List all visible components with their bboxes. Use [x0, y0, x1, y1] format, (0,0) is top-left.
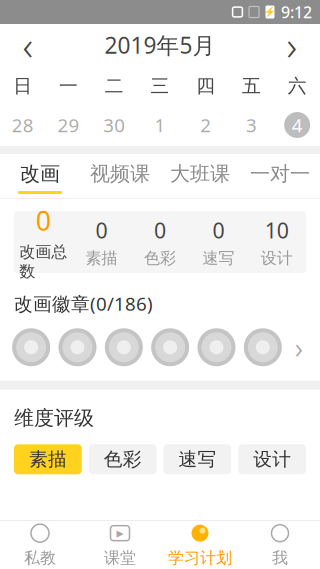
staticText: 一 [59, 74, 78, 97]
staticText: 2 [200, 113, 211, 137]
button[interactable]: 一对一 [240, 154, 320, 198]
staticText: 课堂 [104, 548, 136, 568]
staticText: 设计 [253, 448, 291, 471]
staticText: 四 [196, 74, 215, 97]
staticText: 我 [272, 548, 288, 568]
staticText: 0 [212, 216, 224, 244]
staticText: 素描 [86, 248, 118, 268]
staticText: › [286, 18, 297, 71]
button[interactable]: 改画 [0, 154, 80, 198]
staticText: 29 [58, 113, 80, 137]
staticText: 色彩 [144, 248, 176, 268]
staticText: 2019年5月 [104, 30, 215, 60]
staticText: ⚡ [264, 7, 276, 17]
button[interactable]: 3 [229, 108, 274, 142]
staticText: 五 [242, 74, 261, 97]
staticText: 改画徽章(0/186) [14, 291, 153, 316]
staticText: 色彩 [104, 448, 142, 471]
button[interactable]: 2 [183, 108, 229, 142]
staticText: 0 [96, 216, 108, 244]
staticText: 二 [105, 74, 124, 97]
button[interactable]: 视频课 [80, 154, 160, 198]
staticText: 10 [265, 216, 289, 244]
staticText: 维度评级 [14, 406, 94, 430]
staticText: 速写 [202, 248, 234, 268]
staticText: 视频课 [90, 161, 150, 186]
button[interactable]: 速写 [163, 444, 231, 474]
staticText: › [295, 328, 303, 367]
staticText: 1 [154, 113, 165, 137]
button[interactable]: 学习计划 [160, 521, 240, 569]
staticText: 一对一 [250, 161, 310, 186]
button[interactable]: Next month [264, 24, 320, 66]
staticText: 速写 [178, 448, 216, 471]
button[interactable]: 28 [0, 108, 46, 142]
staticText: 三 [150, 74, 169, 97]
button[interactable]: 色彩 [89, 444, 157, 474]
staticText: 改画总数 [19, 242, 67, 281]
button[interactable]: 4 [274, 108, 320, 142]
button[interactable]: 我 [240, 521, 320, 569]
staticText: 9:12 [281, 1, 312, 23]
button[interactable]: 私教 [0, 521, 80, 569]
button[interactable]: 大班课 [160, 154, 240, 198]
button[interactable]: 设计 [238, 444, 306, 474]
staticText: 30 [103, 113, 125, 137]
button[interactable]: ▶ [80, 521, 160, 569]
button[interactable]: 素描 [14, 444, 82, 474]
staticText: 0 [154, 216, 166, 244]
button[interactable]: Previous month [0, 24, 56, 66]
staticText: 4 [292, 113, 303, 137]
staticText: 28 [12, 113, 34, 137]
staticText: 私教 [24, 548, 56, 568]
staticText: 素描 [29, 448, 67, 471]
staticText: 3 [246, 113, 257, 137]
staticText: 0 [36, 203, 51, 238]
staticText: 学习计划 [168, 548, 232, 568]
staticText: ▶ [116, 528, 123, 538]
staticText: 日 [13, 74, 32, 97]
button[interactable]: Badges [0, 316, 320, 381]
staticText: 改画 [20, 161, 60, 186]
staticText: 设计 [261, 248, 293, 268]
staticText: ‹ [22, 18, 33, 71]
button[interactable]: 29 [46, 108, 91, 142]
staticText: 六 [288, 74, 307, 97]
button[interactable]: 30 [91, 108, 137, 142]
button[interactable]: 1 [137, 108, 183, 142]
staticText: 大班课 [170, 161, 230, 186]
